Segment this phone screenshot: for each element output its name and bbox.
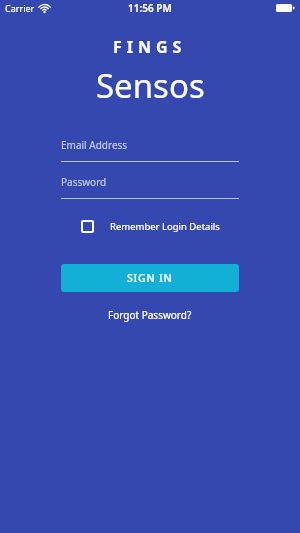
button[interactable]: Remember Login Details	[81, 220, 220, 233]
staticText: Remember Login Details	[110, 220, 220, 233]
staticText: 11:56 PM	[128, 1, 172, 15]
staticText: Email Address	[61, 138, 128, 152]
staticText: Sensos	[96, 63, 205, 108]
staticText: FINGS	[113, 36, 187, 58]
staticText: Carrier	[5, 2, 35, 14]
button[interactable]: Forgot Password?	[108, 308, 192, 322]
button[interactable]: SIGN IN	[61, 264, 239, 292]
staticText: Password	[61, 175, 107, 189]
staticText: SIGN IN	[127, 271, 173, 285]
